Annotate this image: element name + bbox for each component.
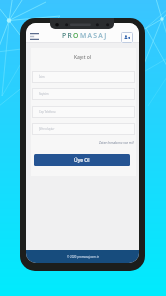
- staticText: Üye Ol: [74, 157, 90, 164]
- button[interactable]: Sign in: [121, 32, 133, 43]
- staticText: Cep Telefonu: [39, 110, 56, 114]
- staticText: Soyisim: [39, 92, 49, 96]
- staticText: İsim: [39, 75, 45, 79]
- staticText: © 2020 promasaj.com.tr: [67, 255, 99, 259]
- button[interactable]: Cep Telefonu: [32, 106, 135, 118]
- button[interactable]: Zaten hesabınız var mı?: [34, 141, 134, 145]
- button[interactable]: Üye Ol: [34, 154, 130, 166]
- button[interactable]: İsim: [32, 71, 135, 83]
- button[interactable]: Menu: [28, 31, 40, 41]
- button[interactable]: Şifre oluştur: [32, 123, 135, 135]
- button[interactable]: Soyisim: [32, 88, 135, 100]
- staticText: Kayıt ol: [26, 54, 139, 61]
- staticText: Şifre oluştur: [39, 127, 55, 131]
- staticText: MASAJ: [80, 31, 108, 40]
- staticText: O: [73, 31, 80, 40]
- staticText: PR: [62, 31, 73, 40]
